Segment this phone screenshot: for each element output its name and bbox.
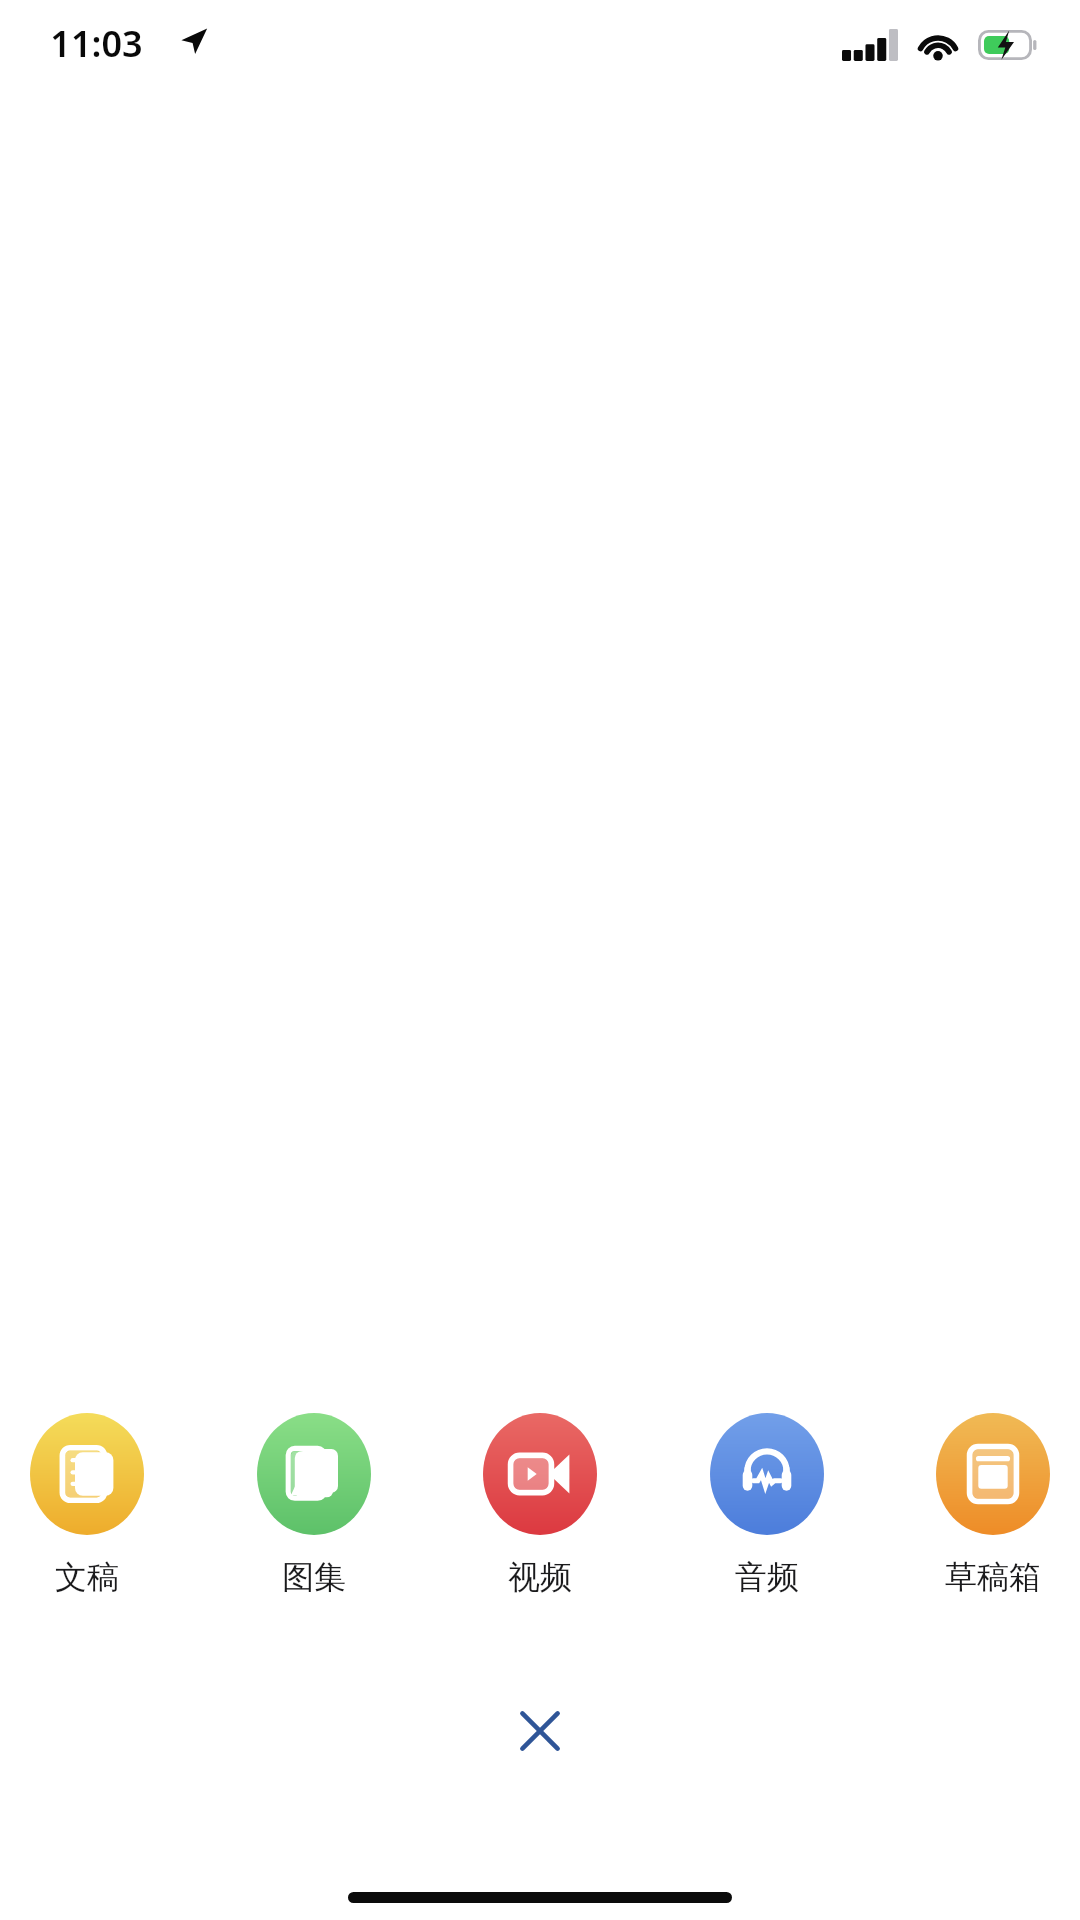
button[interactable]: 图集 [257, 1413, 371, 1597]
button[interactable]: Close [497, 1688, 583, 1774]
staticText: 文稿 [55, 1557, 119, 1597]
staticText: 11:03 [50, 19, 143, 68]
button[interactable]: 视频 [483, 1413, 597, 1597]
staticText: 音频 [735, 1557, 799, 1597]
button[interactable]: 文稿 [30, 1413, 144, 1597]
staticText: 视频 [508, 1557, 572, 1597]
staticText: 图集 [282, 1557, 346, 1597]
button[interactable]: 草稿箱 [936, 1413, 1050, 1597]
button[interactable]: 音频 [710, 1413, 824, 1597]
staticText: 草稿箱 [945, 1557, 1041, 1597]
